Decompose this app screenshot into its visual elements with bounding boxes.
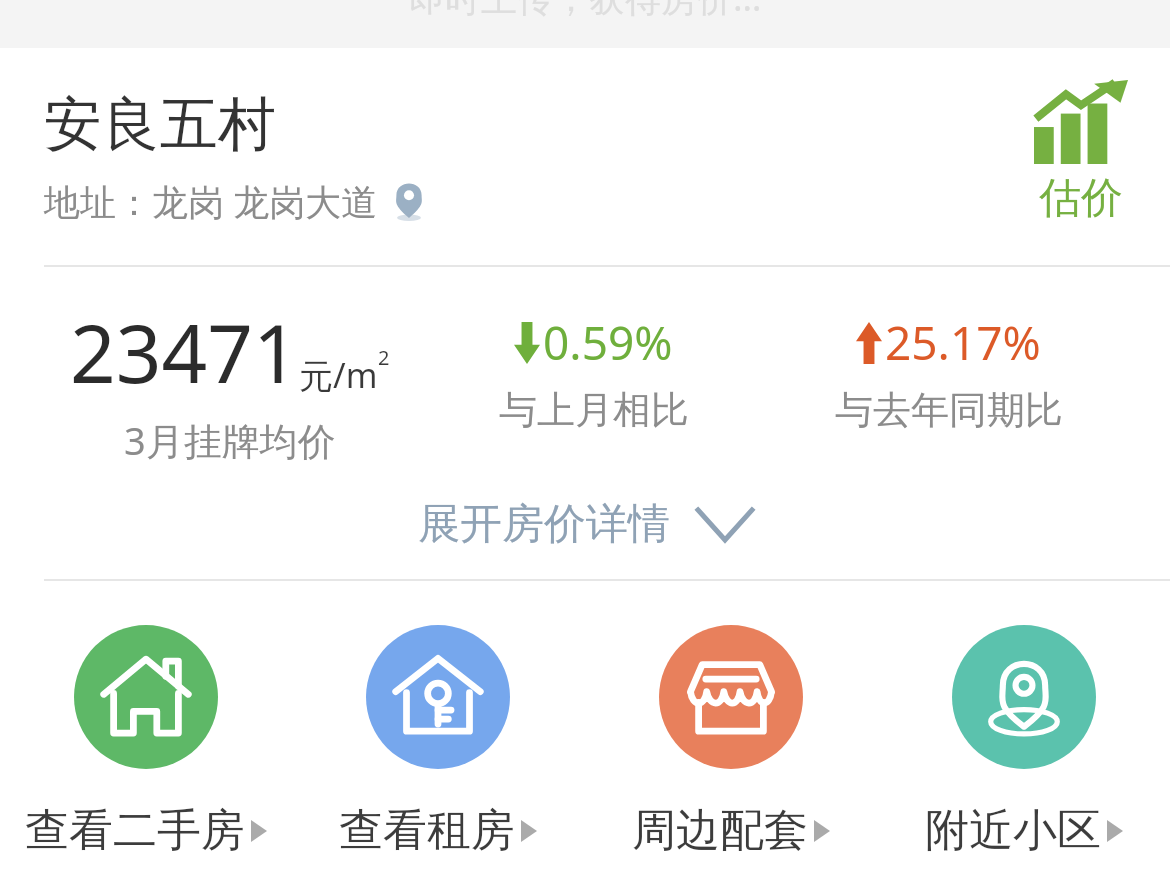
staticText: 展开房价详情: [418, 498, 670, 551]
staticText: 附近小区: [925, 803, 1101, 858]
other: 周边配套: [686, 652, 776, 742]
staticText: 与上月相比: [499, 386, 689, 434]
button[interactable]: 估价: [1028, 76, 1134, 229]
button[interactable]: 展开房价详情: [0, 490, 1170, 559]
staticText: 与去年同期比: [835, 386, 1063, 434]
staticText: 0.59%: [543, 311, 673, 374]
staticText: 周边配套: [632, 803, 808, 858]
button[interactable]: 查看二手房: [0, 625, 292, 858]
staticText: 元/m: [299, 352, 378, 398]
staticText: 安良五村: [44, 88, 276, 161]
other: 附近小区: [979, 652, 1069, 742]
staticText: 查看租房: [339, 803, 515, 858]
other: 查看二手房: [101, 652, 191, 742]
staticText: 25.17%: [885, 311, 1041, 374]
button[interactable]: 周边配套: [584, 625, 877, 858]
button[interactable]: 附近小区: [877, 625, 1170, 858]
staticText: 3月挂牌均价: [124, 414, 336, 466]
button[interactable]: 查看租房: [292, 625, 584, 858]
staticText: 估价: [1039, 172, 1123, 225]
other: 查看租房: [393, 652, 483, 742]
staticText: 即时上传，获得房价…: [409, 0, 762, 21]
staticText: 23471: [70, 297, 299, 406]
staticText: 地址：龙岗 龙岗大道: [44, 177, 378, 226]
staticText: 2: [378, 344, 390, 371]
staticText: 查看二手房: [25, 803, 245, 858]
